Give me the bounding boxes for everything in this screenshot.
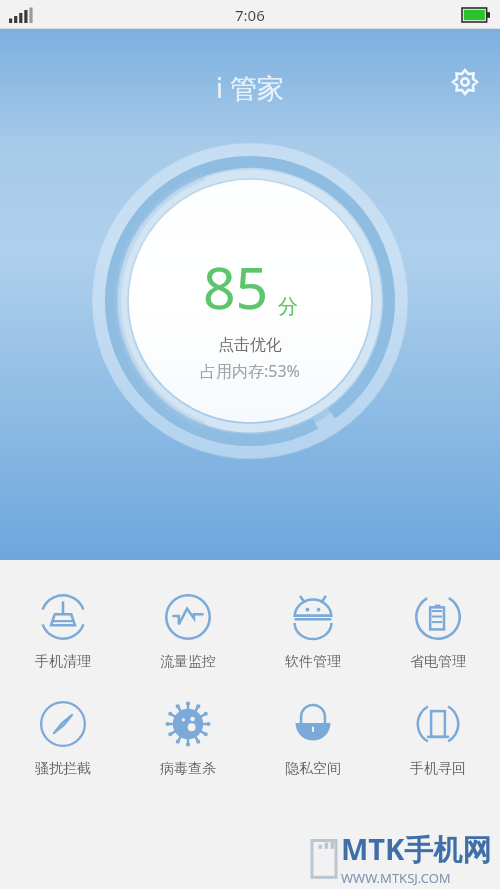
staticText: 点击优化 [218,335,282,355]
staticText: i 管家 [216,69,284,106]
staticText: 手机寻回 [410,760,466,778]
button[interactable]: Settings [442,59,488,105]
button[interactable]: 病毒查杀 [125,695,250,784]
staticText: 省电管理 [410,653,466,671]
staticText: MTK手机网 [341,829,492,869]
staticText: WWW.MTKSJ.COM [341,869,451,887]
staticText: 软件管理 [285,653,341,671]
staticText: 7:06 [235,5,265,25]
staticText: 占用内存:53% [200,360,300,382]
button[interactable]: 省电管理 [375,588,500,677]
staticText: 85 [203,248,269,326]
staticText: 隐私空间 [285,760,341,778]
staticText: 骚扰拦截 [35,760,91,778]
button[interactable]: 流量监控 [125,588,250,677]
staticText: 流量监控 [160,653,216,671]
button[interactable]: 手机清理 [0,588,125,677]
staticText: 手机清理 [35,653,91,671]
staticText: 病毒查杀 [160,760,216,778]
button[interactable]: 骚扰拦截 [0,695,125,784]
staticText: 分 [278,294,298,319]
button[interactable]: 85 [91,142,409,460]
button[interactable]: 隐私空间 [250,695,375,784]
button[interactable]: 手机寻回 [375,695,500,784]
button[interactable]: 软件管理 [250,588,375,677]
